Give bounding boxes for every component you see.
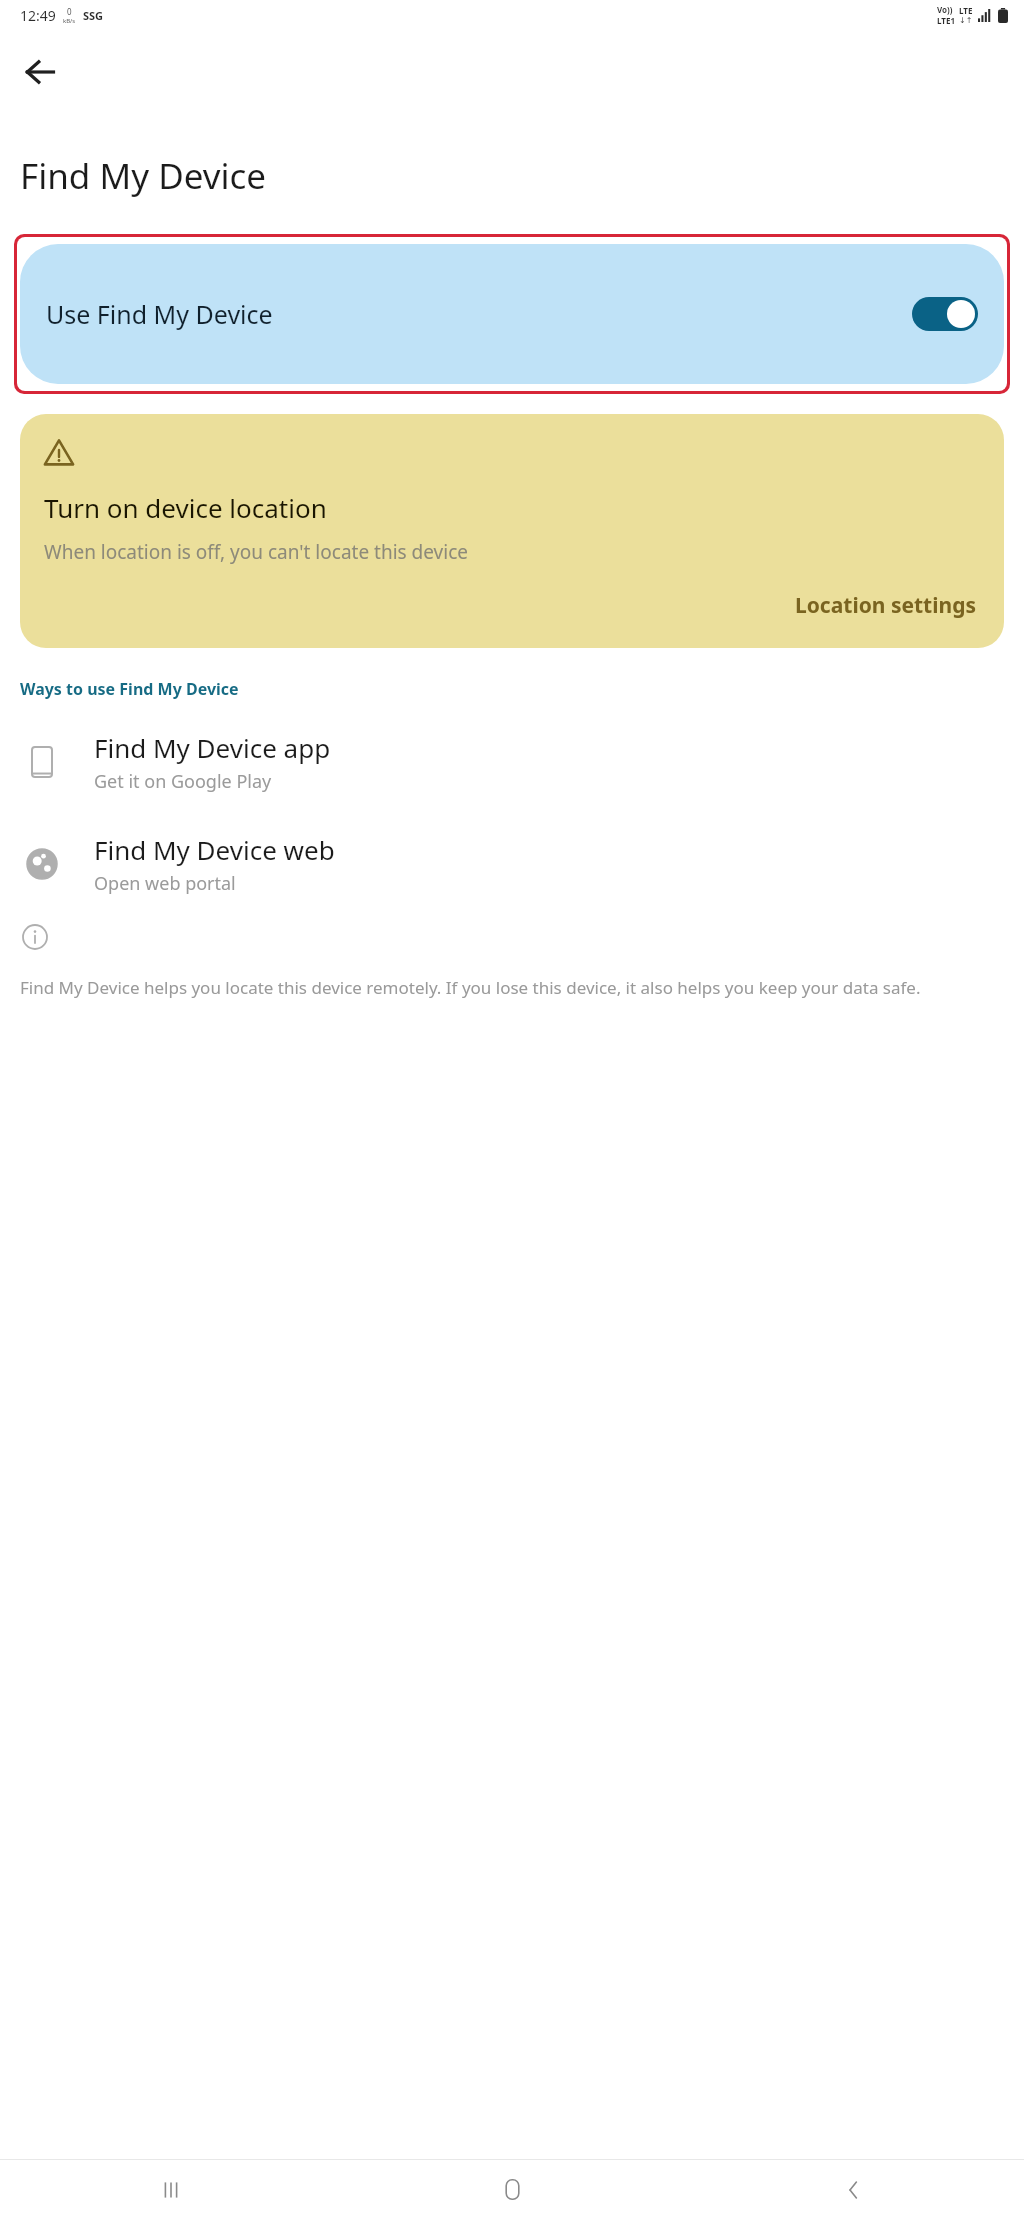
staticText: Find My Device helps you locate this dev…: [20, 976, 921, 999]
staticText: LTE1: [937, 15, 955, 26]
button[interactable]: Recent apps: [0, 2160, 342, 2219]
staticText: Get it on Google Play: [94, 769, 272, 794]
button[interactable]: Back: [683, 2160, 1024, 2219]
button[interactable]: Back: [12, 44, 68, 100]
staticText: Ways to use Find My Device: [20, 678, 239, 700]
staticText: Find My Device app: [94, 730, 331, 765]
staticText: Vo)): [937, 4, 953, 15]
button[interactable]: Find My Device web: [0, 826, 1024, 902]
button[interactable]: Find My Device app: [0, 724, 1024, 800]
staticText: LTE: [959, 5, 973, 16]
staticText: Location settings: [795, 591, 976, 620]
staticText: When location is off, you can't locate t…: [44, 539, 469, 565]
staticText: 12:49: [20, 6, 56, 25]
button[interactable]: Use Find My Device: [20, 244, 1004, 384]
staticText: kB/s: [63, 17, 76, 25]
staticText: 0: [67, 6, 72, 17]
staticText: Use Find My Device: [46, 297, 273, 331]
staticText: Turn on device location: [44, 490, 327, 525]
staticText: Find My Device: [20, 152, 267, 200]
button[interactable]: Location settings: [791, 587, 980, 624]
staticText: SSG: [83, 8, 104, 23]
staticText: Find My Device web: [94, 832, 335, 867]
staticText: Open web portal: [94, 871, 236, 896]
button[interactable]: Home: [342, 2160, 683, 2219]
staticText: ↓↑: [959, 16, 973, 25]
